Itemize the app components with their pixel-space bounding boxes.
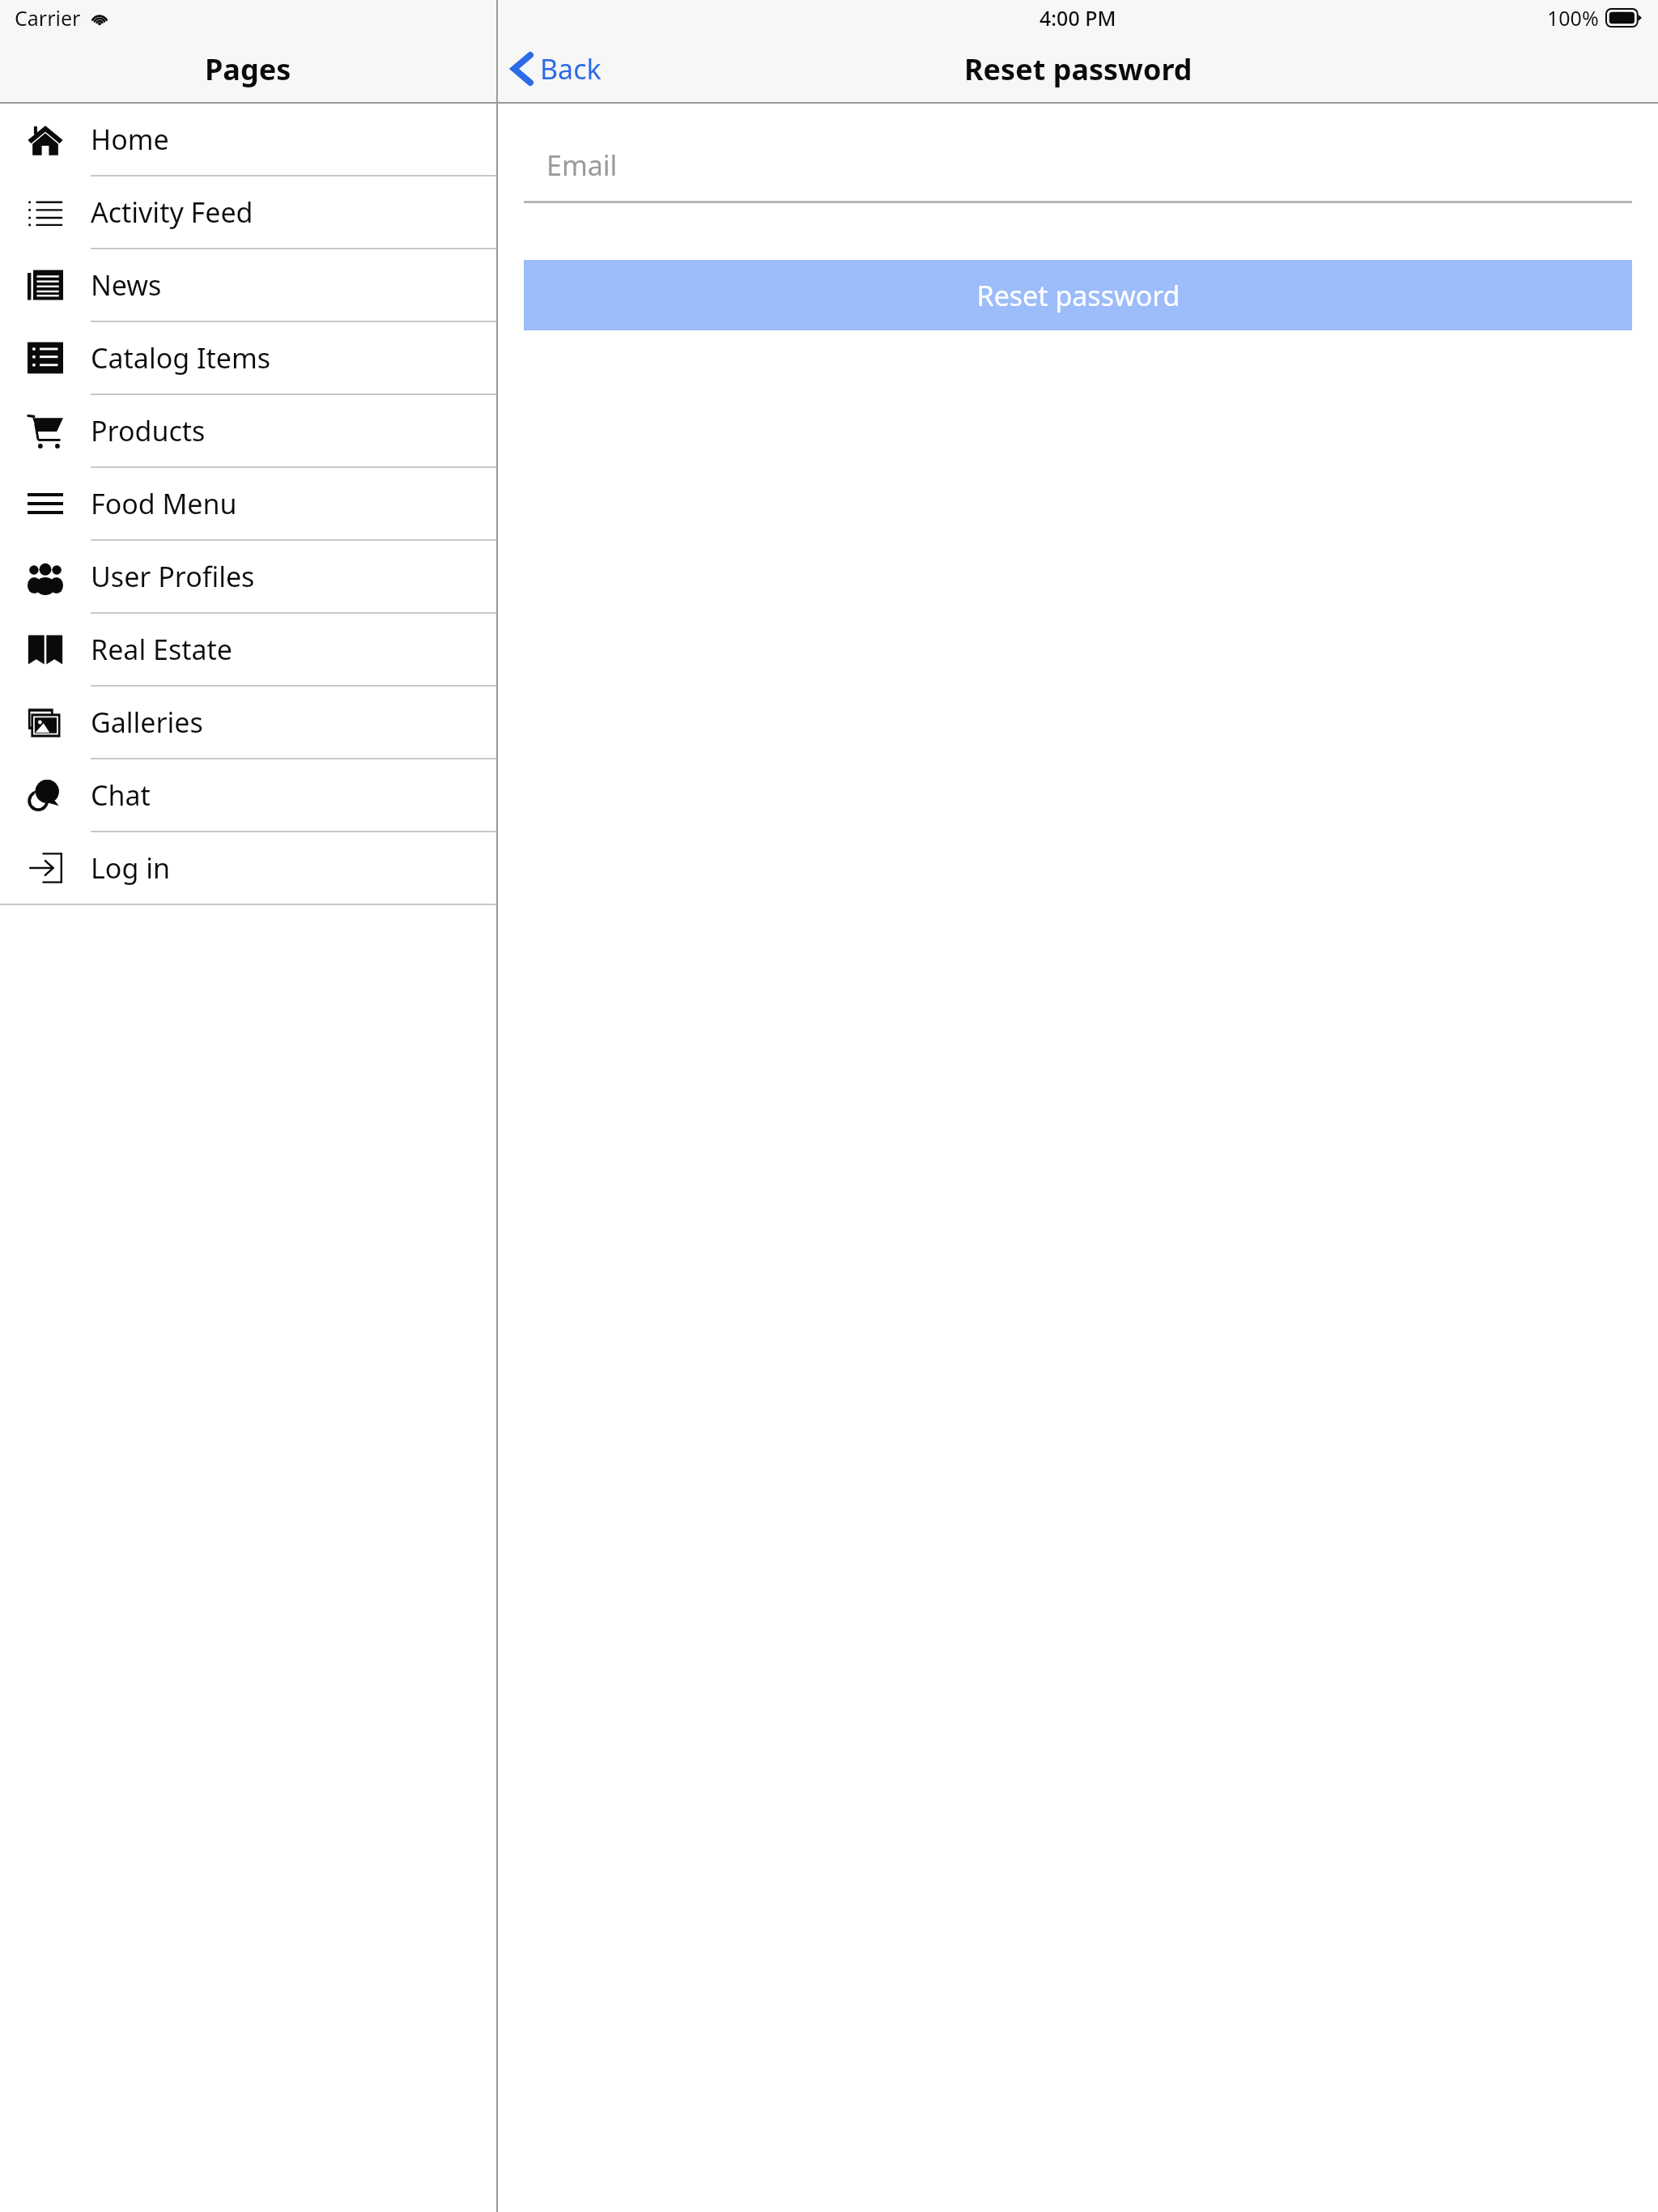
button[interactable]: Products	[0, 395, 496, 468]
staticText: 100%	[1547, 4, 1599, 32]
button[interactable]: Real Estate	[0, 614, 496, 687]
staticText: Reset password	[964, 49, 1192, 89]
staticText: Email	[546, 147, 618, 184]
staticText: Log in	[91, 849, 170, 887]
staticText: Activity Feed	[91, 194, 253, 231]
staticText: Pages	[205, 49, 291, 89]
staticText: Real Estate	[91, 631, 232, 668]
staticText: Carrier	[15, 4, 81, 32]
staticText: User Profiles	[91, 558, 255, 595]
staticText: Chat	[91, 776, 151, 814]
button[interactable]: Log in	[0, 832, 496, 905]
button[interactable]: Food Menu	[0, 468, 496, 541]
button[interactable]: Activity Feed	[0, 177, 496, 249]
staticText: Catalog Items	[91, 339, 271, 376]
staticText: Back	[540, 50, 602, 87]
button[interactable]: Home	[0, 104, 496, 177]
button[interactable]: User Profiles	[0, 541, 496, 614]
button[interactable]: Catalog Items	[0, 322, 496, 395]
button[interactable]: Chat	[0, 759, 496, 832]
staticText: Reset password	[976, 277, 1180, 314]
staticText: News	[91, 266, 162, 304]
staticText: Galleries	[91, 704, 203, 741]
staticText: Home	[91, 121, 169, 158]
staticText: Food Menu	[91, 485, 237, 522]
staticText: Products	[91, 412, 206, 449]
button[interactable]: Reset password	[524, 260, 1632, 330]
button[interactable]: Back	[498, 44, 616, 94]
staticText: 4:00 PM	[1039, 4, 1116, 32]
button[interactable]: News	[0, 249, 496, 322]
button[interactable]: Galleries	[0, 687, 496, 759]
button[interactable]: Email	[524, 130, 1632, 201]
